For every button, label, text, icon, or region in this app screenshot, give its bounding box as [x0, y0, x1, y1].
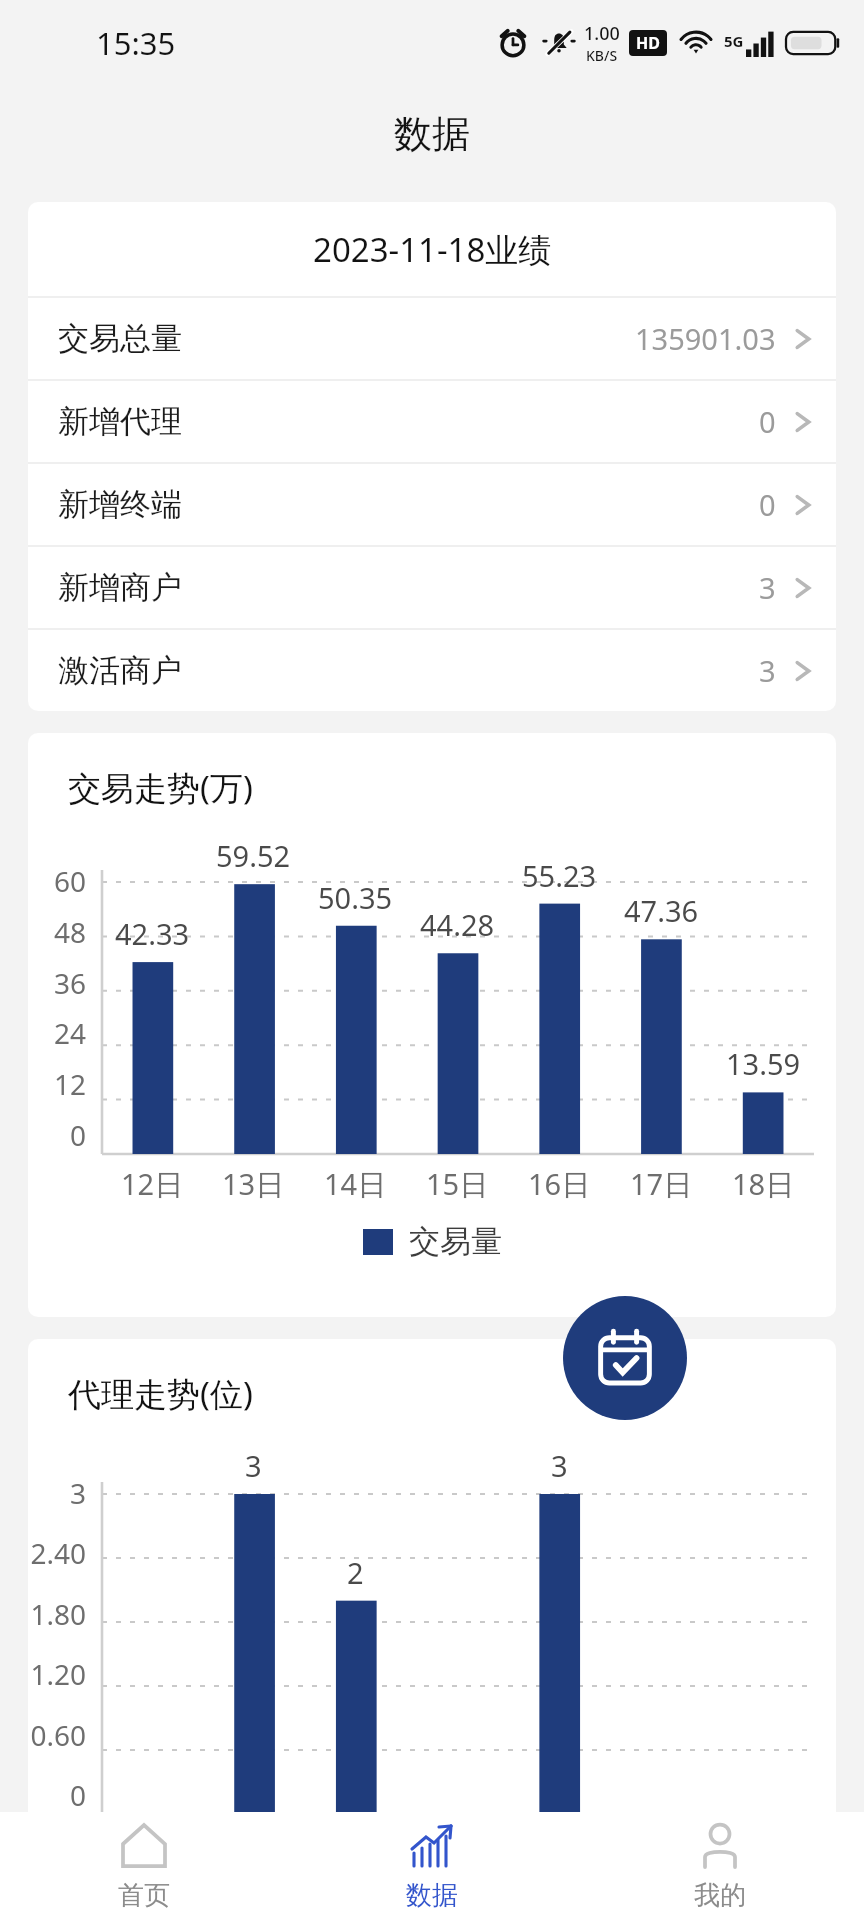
staticText: 3 — [759, 651, 776, 690]
staticText: 17日 — [630, 1164, 693, 1204]
staticText: 0 — [759, 402, 776, 441]
button[interactable]: 激活商户 — [28, 630, 836, 711]
staticText: 0 — [759, 485, 776, 524]
staticText: 15日 — [426, 1164, 489, 1204]
button[interactable]: Pick date — [563, 1296, 687, 1420]
staticText: 36 — [53, 964, 86, 1002]
staticText: 3 — [551, 1446, 568, 1485]
staticText: 16日 — [528, 1164, 591, 1204]
staticText: KB/S — [586, 46, 618, 65]
button[interactable]: 我的 — [576, 1812, 864, 1920]
staticText: 交易走势(万) — [68, 765, 253, 810]
staticText: 2023-11-18业绩 — [313, 227, 552, 272]
staticText: 数据 — [406, 1879, 458, 1912]
staticText: 5G — [724, 31, 744, 51]
staticText: 首页 — [118, 1879, 170, 1912]
staticText: 44.28 — [420, 905, 495, 944]
staticText: 1.00 — [584, 21, 620, 46]
staticText: 15:35 — [96, 22, 176, 64]
staticText: 47.36 — [624, 891, 699, 930]
staticText: 2.40 — [30, 1534, 86, 1572]
staticText: 12日 — [121, 1164, 184, 1204]
button[interactable]: 交易总量 — [28, 298, 836, 379]
staticText: 42.33 — [115, 914, 190, 953]
staticText: 3 — [245, 1446, 262, 1485]
staticText: 13日 — [222, 1164, 285, 1204]
staticText: 新增代理 — [58, 402, 182, 441]
staticText: 135901.03 — [635, 319, 776, 358]
staticText: 3 — [69, 1474, 86, 1512]
staticText: 3 — [759, 568, 776, 607]
staticText: 48 — [53, 913, 86, 951]
staticText: 0 — [69, 1776, 86, 1814]
staticText: 12 — [53, 1065, 86, 1103]
staticText: 0.60 — [30, 1716, 86, 1754]
staticText: HD — [636, 32, 660, 54]
staticText: 代理走势(位) — [68, 1371, 253, 1416]
button[interactable]: 新增终端 — [28, 464, 836, 545]
staticText: 2 — [347, 1553, 364, 1592]
button[interactable]: 数据 — [288, 1812, 576, 1920]
staticText: 59.52 — [216, 836, 291, 875]
staticText: 13.59 — [726, 1044, 801, 1083]
staticText: 激活商户 — [58, 651, 182, 690]
staticText: 0 — [69, 1116, 86, 1154]
button[interactable]: 新增商户 — [28, 547, 836, 628]
staticText: 交易总量 — [58, 319, 182, 358]
staticText: 我的 — [694, 1879, 746, 1912]
staticText: 新增商户 — [58, 568, 182, 607]
staticText: 18日 — [732, 1164, 795, 1204]
staticText: 55.23 — [522, 856, 597, 895]
staticText: 1.20 — [30, 1655, 86, 1693]
button[interactable]: 首页 — [0, 1812, 288, 1920]
staticText: 新增终端 — [58, 485, 182, 524]
staticText: 24 — [53, 1014, 86, 1052]
staticText: 交易量 — [409, 1222, 502, 1261]
button[interactable]: 新增代理 — [28, 381, 836, 462]
staticText: 60 — [53, 862, 86, 900]
staticText: 1.80 — [30, 1595, 86, 1633]
staticText: 14日 — [324, 1164, 387, 1204]
staticText: 数据 — [394, 110, 470, 158]
staticText: 50.35 — [318, 878, 393, 917]
